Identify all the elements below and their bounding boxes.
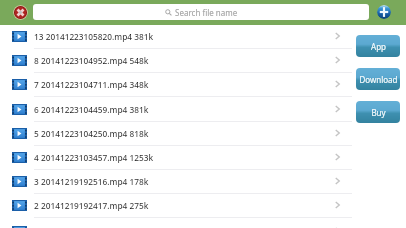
button[interactable]: 1 20141219192300.mp4 300k: [0, 220, 352, 228]
staticText: 3 20141219192516.mp4 178k: [34, 176, 335, 187]
staticText: 6 20141223104459.mp4 381k: [34, 104, 335, 115]
staticText: 8 20141223104952.mp4 548k: [34, 55, 335, 66]
button[interactable]: 5 20141223104250.mp4 818k: [0, 122, 352, 146]
button[interactable]: 2 20141219192417.mp4 275k: [0, 194, 352, 218]
button[interactable]: Close: [13, 5, 28, 20]
staticText: Download: [359, 74, 398, 85]
staticText: Search file name: [175, 7, 238, 18]
staticText: 7 20141223104711.mp4 348k: [34, 79, 335, 90]
button[interactable]: 13 20141223105820.mp4 381k: [0, 25, 352, 49]
button[interactable]: Search file name: [33, 4, 369, 20]
button[interactable]: App: [356, 35, 400, 57]
staticText: 13 20141223105820.mp4 381k: [34, 31, 335, 42]
staticText: App: [371, 41, 386, 52]
button[interactable]: Download: [356, 68, 400, 90]
button[interactable]: 7 20141223104711.mp4 348k: [0, 73, 352, 97]
staticText: 4 20141223103457.mp4 1253k: [34, 152, 335, 163]
staticText: 2 20141219192417.mp4 275k: [34, 200, 335, 211]
staticText: 5 20141223104250.mp4 818k: [34, 128, 335, 139]
button[interactable]: Buy: [356, 101, 400, 123]
button[interactable]: 3 20141219192516.mp4 178k: [0, 170, 352, 194]
button[interactable]: 8 20141223104952.mp4 548k: [0, 49, 352, 73]
button[interactable]: 4 20141223103457.mp4 1253k: [0, 146, 352, 170]
button[interactable]: Add: [377, 5, 391, 19]
button[interactable]: 6 20141223104459.mp4 381k: [0, 98, 352, 122]
staticText: Buy: [371, 107, 386, 118]
